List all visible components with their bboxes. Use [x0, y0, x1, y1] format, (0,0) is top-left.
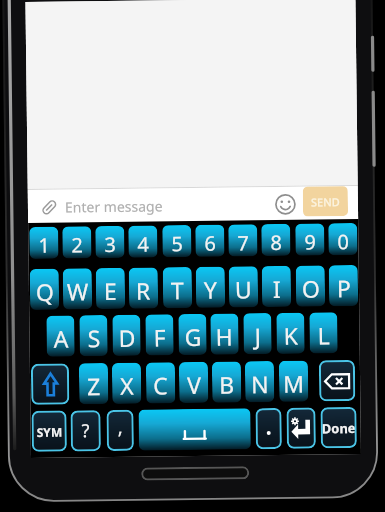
button[interactable]: 8 [261, 224, 291, 256]
button[interactable]: W [63, 268, 92, 310]
button[interactable]: ? [70, 410, 101, 451]
button[interactable]: P [329, 265, 358, 306]
staticText: 9 [304, 228, 316, 256]
button[interactable]: X [112, 363, 141, 404]
button[interactable]: 9 [295, 223, 325, 256]
staticText: Enter message [65, 196, 163, 216]
staticText: 4 [137, 230, 149, 258]
staticText: SEND [311, 194, 340, 210]
button[interactable]: Enter message [28, 186, 358, 223]
staticText: L [317, 319, 331, 350]
button[interactable]: 4 [128, 225, 158, 258]
button[interactable]: Done [320, 407, 357, 448]
button[interactable]: J [243, 313, 272, 354]
staticText: 7 [237, 229, 249, 256]
button[interactable]: G [178, 314, 207, 355]
button[interactable]: U [229, 266, 258, 308]
staticText: Done [322, 419, 356, 437]
button[interactable]: 2 [62, 226, 92, 259]
button[interactable] [255, 408, 282, 449]
staticText: E [104, 275, 117, 306]
staticText: S [87, 322, 101, 353]
staticText: D [118, 322, 136, 353]
staticText: 5 [171, 230, 183, 257]
staticText: O [302, 272, 320, 304]
button[interactable] [286, 407, 316, 449]
staticText: U [235, 273, 252, 304]
staticText: A [53, 322, 69, 354]
staticText: 8 [270, 229, 282, 256]
button[interactable]: 1 [29, 227, 59, 259]
staticText: K [283, 320, 299, 351]
staticText: X [120, 370, 134, 401]
button[interactable]: M [279, 361, 308, 402]
button[interactable]: K [276, 313, 305, 354]
button[interactable] [275, 194, 296, 215]
button[interactable]: D [112, 315, 141, 356]
button[interactable]: V [179, 362, 208, 403]
staticText: N [251, 368, 269, 399]
button[interactable]: 6 [195, 225, 225, 257]
button[interactable]: T [163, 267, 192, 308]
staticText: R [136, 274, 151, 306]
staticText: B [219, 368, 234, 400]
staticText: P [337, 272, 351, 303]
staticText: ? [81, 418, 90, 443]
button[interactable]: SEND [303, 186, 348, 217]
button[interactable]: S [79, 315, 108, 356]
button[interactable]: 7 [228, 224, 258, 257]
button[interactable]: C [146, 362, 175, 404]
button[interactable]: I [262, 266, 291, 307]
staticText: H [215, 320, 234, 352]
button[interactable]: O [296, 265, 325, 307]
button[interactable]: 5 [162, 225, 192, 257]
staticText: C [153, 369, 168, 400]
staticText: 2 [71, 231, 84, 258]
button[interactable]: H [210, 313, 239, 355]
staticText: 6 [204, 230, 216, 257]
staticText: 3 [104, 231, 117, 258]
button[interactable]: Z [79, 363, 108, 404]
button[interactable]: Y [196, 267, 225, 308]
button[interactable]: N [245, 361, 274, 402]
staticText: M [283, 368, 304, 399]
button[interactable]: 3 [95, 226, 125, 258]
button[interactable]: Q [30, 269, 59, 310]
staticText: SYM [37, 424, 63, 440]
button[interactable]: E [96, 268, 125, 309]
button[interactable] [31, 363, 69, 405]
button[interactable]: 0 [328, 223, 358, 255]
button[interactable]: L [309, 312, 338, 353]
staticText: Y [204, 274, 218, 305]
staticText: 1 [38, 232, 51, 259]
staticText: V [187, 369, 201, 400]
staticText: Q [36, 276, 54, 307]
staticText: I [273, 273, 281, 304]
staticText: T [171, 274, 184, 305]
button[interactable]: SYM [31, 410, 67, 452]
button[interactable]: R [129, 267, 158, 309]
staticText: Z [87, 370, 101, 401]
button[interactable] [319, 360, 355, 401]
button[interactable]: , [106, 410, 134, 451]
button[interactable]: B [212, 361, 241, 403]
staticText: F [153, 321, 166, 352]
button[interactable]: A [46, 315, 75, 357]
staticText: 0 [337, 228, 349, 255]
button[interactable] [138, 408, 251, 451]
button[interactable]: F [145, 314, 174, 355]
staticText: J [254, 320, 262, 351]
staticText: , [117, 414, 124, 440]
staticText: W [67, 275, 89, 306]
staticText: G [184, 321, 202, 352]
